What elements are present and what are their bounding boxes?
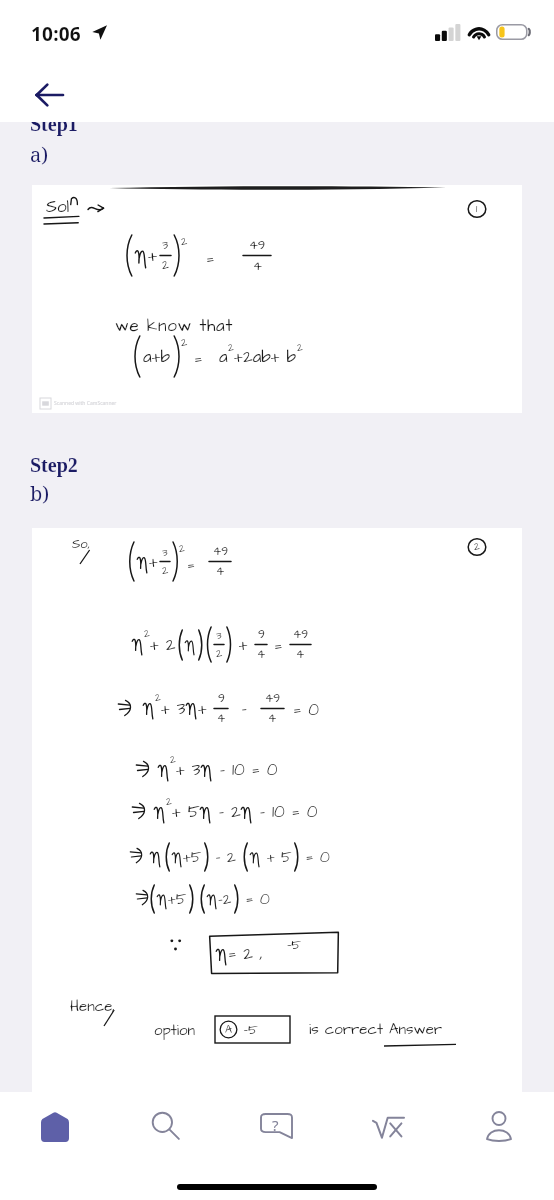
staticText: 2 <box>181 234 188 249</box>
staticText: Scanned with CamScanner <box>54 400 117 407</box>
staticText: 2 <box>162 257 169 274</box>
staticText: Sol <box>46 195 70 219</box>
staticText: + <box>232 633 255 657</box>
button[interactable]: Back <box>24 70 74 120</box>
staticText: Step2 <box>30 454 78 476</box>
staticText: + <box>149 550 158 574</box>
staticText: is correct Answer <box>309 1019 443 1040</box>
staticText: 1 <box>476 202 478 216</box>
staticText: Step1 <box>30 113 78 135</box>
staticText: a) <box>30 141 49 168</box>
staticText: + 5 <box>261 847 292 868</box>
staticText: −5 <box>238 1020 258 1039</box>
staticText: option <box>154 1020 196 1041</box>
staticText: we know that <box>115 314 234 338</box>
staticText: 2 <box>179 542 185 556</box>
staticText: +5 <box>168 889 187 910</box>
staticText: +5 <box>183 847 202 868</box>
staticText: 2 <box>297 341 303 355</box>
staticText: − <box>228 697 261 721</box>
staticText: a+b <box>143 345 171 369</box>
staticText: 49 <box>249 236 266 254</box>
staticText: − 2 <box>212 800 241 824</box>
staticText: 4 <box>257 646 266 663</box>
staticText: = 0 <box>239 888 270 910</box>
staticText: = 0 <box>293 698 319 722</box>
button[interactable]: Ask a question <box>221 1092 332 1160</box>
staticText: 2 <box>474 540 480 554</box>
staticText: 3 <box>216 628 222 643</box>
staticText: 2 <box>181 335 188 350</box>
staticText: 4 <box>296 646 305 663</box>
staticText: 49 <box>213 543 228 560</box>
staticText: 3 <box>162 545 168 560</box>
staticText: 4 <box>268 710 277 727</box>
staticText: 49 <box>293 626 308 643</box>
staticText: 2 <box>170 753 176 767</box>
staticText: 9 <box>218 690 225 707</box>
staticText: 49 <box>265 690 280 707</box>
staticText: ? <box>272 1115 279 1135</box>
staticText: 4 <box>216 563 225 580</box>
staticText: +2ab+ b <box>234 345 297 369</box>
staticText: Hence, <box>70 996 115 1017</box>
button[interactable]: Home <box>0 1092 110 1160</box>
staticText: + 2 <box>150 633 176 657</box>
staticText: a <box>219 345 228 369</box>
staticText: 2 <box>162 563 169 578</box>
staticText: = <box>187 554 195 576</box>
staticText: + <box>148 243 158 268</box>
staticText: = 0 <box>299 846 330 868</box>
staticText: −2 <box>218 889 232 910</box>
staticText: 4 <box>217 710 226 727</box>
button[interactable]: Search <box>110 1092 221 1160</box>
staticText: = <box>274 634 283 658</box>
staticText: + 3 <box>176 758 201 782</box>
staticText: 4 <box>253 257 262 275</box>
staticText: 2 <box>155 691 161 705</box>
staticText: = 2 , <box>228 942 263 966</box>
staticText: 3 <box>162 237 169 254</box>
button[interactable]: Math solver <box>332 1092 443 1160</box>
button[interactable]: Profile <box>443 1092 554 1160</box>
staticText: b) <box>30 480 50 507</box>
staticText: 2 <box>216 646 223 661</box>
staticText: = <box>194 347 203 371</box>
staticText: + <box>198 697 214 721</box>
staticText: 2 <box>166 795 172 809</box>
staticText: + 3 <box>161 697 186 721</box>
staticText: − 10 = 0 <box>253 800 318 824</box>
staticText: −5 <box>287 935 302 954</box>
staticText: 9 <box>258 626 265 643</box>
staticText: − 10 = 0 <box>213 758 278 782</box>
staticText: + 5 <box>172 800 200 824</box>
staticText: 2 <box>144 627 150 641</box>
staticText: = <box>206 247 215 271</box>
staticText: 2 <box>228 341 234 355</box>
staticText: So, <box>72 535 90 553</box>
staticText: A <box>225 1022 233 1037</box>
staticText: − 2 <box>209 846 243 868</box>
staticText: 10:06 <box>31 21 81 47</box>
